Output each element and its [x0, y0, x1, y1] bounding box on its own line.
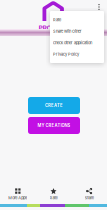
staticText: check other application: [53, 40, 92, 45]
button[interactable]: Share with Other: [50, 25, 104, 37]
button[interactable]: MY CREATIONS: [28, 117, 80, 134]
staticText: Privacy Policy: [53, 52, 79, 57]
button[interactable]: check other application: [50, 37, 104, 48]
button[interactable]: More Apps: [0, 186, 36, 202]
staticText: Share with Other: [53, 29, 82, 34]
button[interactable]: share: [71, 186, 107, 202]
staticText: Rate: [53, 17, 61, 22]
button[interactable]: More options: [93, 1, 105, 13]
staticText: PRO: [38, 24, 51, 32]
staticText: MY CREATIONS: [37, 123, 70, 128]
staticText: CREATE: [45, 103, 63, 108]
button[interactable]: Rate: [50, 14, 104, 25]
staticText: Rate: [49, 195, 57, 200]
staticText: More Apps: [8, 195, 27, 200]
button[interactable]: CREATE: [28, 97, 80, 114]
staticText: share: [85, 195, 94, 200]
button[interactable]: Rate: [36, 186, 71, 202]
button[interactable]: Privacy Policy: [50, 48, 104, 60]
